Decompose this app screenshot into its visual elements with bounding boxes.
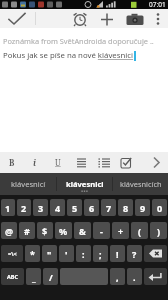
button[interactable] (150, 11, 165, 27)
button[interactable]: ! (110, 245, 125, 262)
staticText: 9 (140, 202, 146, 214)
staticText: klávesnici (66, 179, 104, 189)
staticText: _ (32, 271, 36, 283)
button[interactable]: # (19, 222, 35, 239)
button[interactable]: * (25, 245, 40, 262)
staticText: ( (138, 225, 142, 237)
staticText: 3 (38, 202, 44, 214)
button[interactable]: + (112, 222, 129, 239)
button[interactable]: 6 (84, 199, 99, 216)
staticText: 5 (72, 202, 78, 214)
button[interactable]: B (3, 154, 21, 171)
staticText: Poznámka from SvětAndroida doporučuje .. (3, 36, 154, 46)
button[interactable]: @ (1, 222, 17, 239)
button[interactable] (60, 268, 108, 285)
button[interactable]: i (26, 154, 44, 171)
staticText: ABC (7, 273, 18, 280)
button[interactable] (123, 11, 147, 27)
staticText: % (59, 225, 68, 237)
button[interactable]: klávesnicí (0, 173, 56, 195)
staticText: 4 (55, 202, 61, 214)
staticText: ) (157, 225, 161, 237)
staticText: 2 (21, 202, 27, 214)
button[interactable]: . (127, 268, 142, 285)
button[interactable] (69, 11, 91, 27)
button[interactable]: =\< (1, 245, 23, 262)
button[interactable]: , (110, 268, 125, 285)
button[interactable]: ) (150, 222, 167, 239)
staticText: ; (99, 248, 102, 260)
button[interactable]: 5 (67, 199, 82, 216)
staticText: 0 (157, 202, 163, 214)
button[interactable]: 4 (50, 199, 65, 216)
staticText: , (116, 271, 119, 283)
button[interactable]: klávesnicích (113, 173, 168, 195)
staticText: 6 (89, 202, 95, 214)
button[interactable]: : (76, 245, 91, 262)
button[interactable] (144, 268, 167, 285)
staticText: =\< (8, 250, 17, 257)
button[interactable]: 7 (101, 199, 116, 216)
staticText: U (55, 157, 61, 168)
staticText: @ (5, 225, 14, 237)
staticText: 7 (106, 202, 112, 214)
staticText: i (33, 157, 37, 169)
button[interactable]: - (93, 222, 110, 239)
button[interactable] (144, 245, 167, 262)
staticText: # (24, 225, 30, 237)
staticText: 07:01 (149, 0, 166, 9)
button[interactable]: 8 (118, 199, 133, 216)
staticText: * (30, 248, 35, 260)
button[interactable]: ABC (1, 268, 24, 285)
button[interactable] (117, 154, 135, 171)
staticText: / (49, 271, 53, 283)
button[interactable] (96, 11, 118, 27)
staticText: B (9, 157, 15, 168)
button[interactable]: 2 (17, 199, 31, 216)
button[interactable]: U (49, 154, 67, 171)
button[interactable]: ; (93, 245, 108, 262)
button[interactable]: $ (37, 222, 53, 239)
staticText: " (47, 248, 52, 260)
staticText: : (82, 248, 85, 260)
staticText: Pokus jak se píše na nové klávesnici (3, 50, 134, 61)
staticText: - (100, 225, 103, 237)
button[interactable]: 3 (33, 199, 48, 216)
staticText: 1 (5, 202, 11, 214)
staticText: $ (42, 225, 48, 237)
button[interactable] (95, 154, 113, 171)
staticText: klávesnicích (120, 179, 162, 189)
button[interactable]: klávesnici (57, 173, 112, 195)
button[interactable]: ( (131, 222, 148, 239)
button[interactable]: / (43, 268, 58, 285)
button[interactable]: 1 (1, 199, 15, 216)
staticText: + (118, 225, 124, 237)
button[interactable] (72, 154, 90, 171)
button[interactable]: ? (127, 245, 142, 262)
staticText: ? (132, 248, 137, 260)
staticText: 8 (123, 202, 129, 214)
button[interactable]: _ (26, 268, 41, 285)
staticText: klávesnicí (11, 179, 46, 189)
button[interactable] (4, 11, 32, 27)
staticText: & (79, 225, 86, 237)
staticText: ! (116, 248, 119, 260)
button[interactable]: ' (59, 245, 74, 262)
button[interactable]: & (74, 222, 91, 239)
staticText: ' (65, 248, 68, 260)
button[interactable]: 9 (135, 199, 150, 216)
button[interactable]: 0 (152, 199, 167, 216)
button[interactable]: " (42, 245, 57, 262)
button[interactable]: % (55, 222, 72, 239)
staticText: . (133, 271, 136, 283)
button[interactable] (147, 154, 165, 171)
